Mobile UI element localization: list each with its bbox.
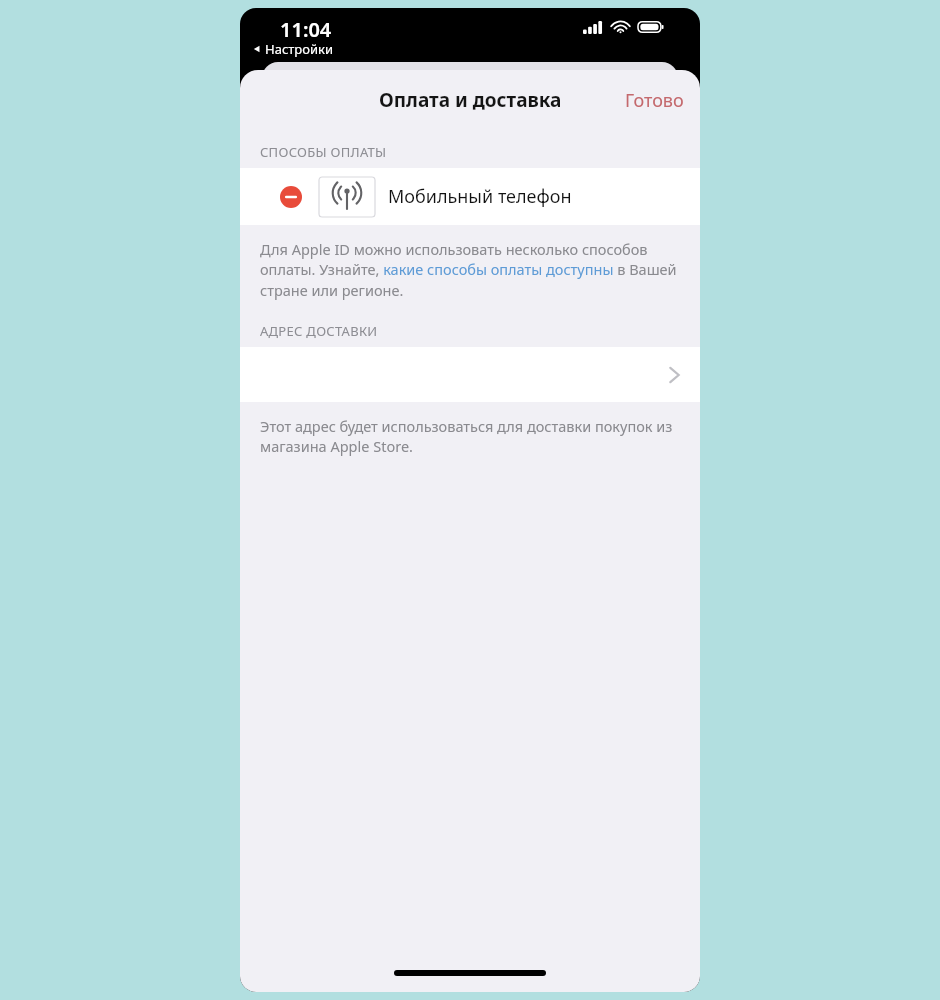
staticText: Этот адрес будет использоваться для дост… (260, 416, 678, 457)
staticText: Готово (625, 88, 684, 113)
button[interactable]: Настройки (252, 40, 334, 58)
staticText: Оплата и доставка (379, 87, 562, 113)
button[interactable]: Удалить способ оплаты (240, 168, 700, 225)
staticText: Для Apple ID можно использовать нескольк… (260, 239, 678, 301)
button[interactable]: Готово (609, 80, 700, 121)
button[interactable]: Удалить способ оплаты (280, 186, 302, 208)
staticText: 11:04 (280, 16, 332, 43)
staticText: АДРЕС ДОСТАВКИ (260, 322, 378, 340)
staticText: Мобильный телефон (388, 184, 572, 209)
staticText: Настройки (265, 40, 334, 58)
staticText: СПОСОБЫ ОПЛАТЫ (260, 143, 387, 161)
